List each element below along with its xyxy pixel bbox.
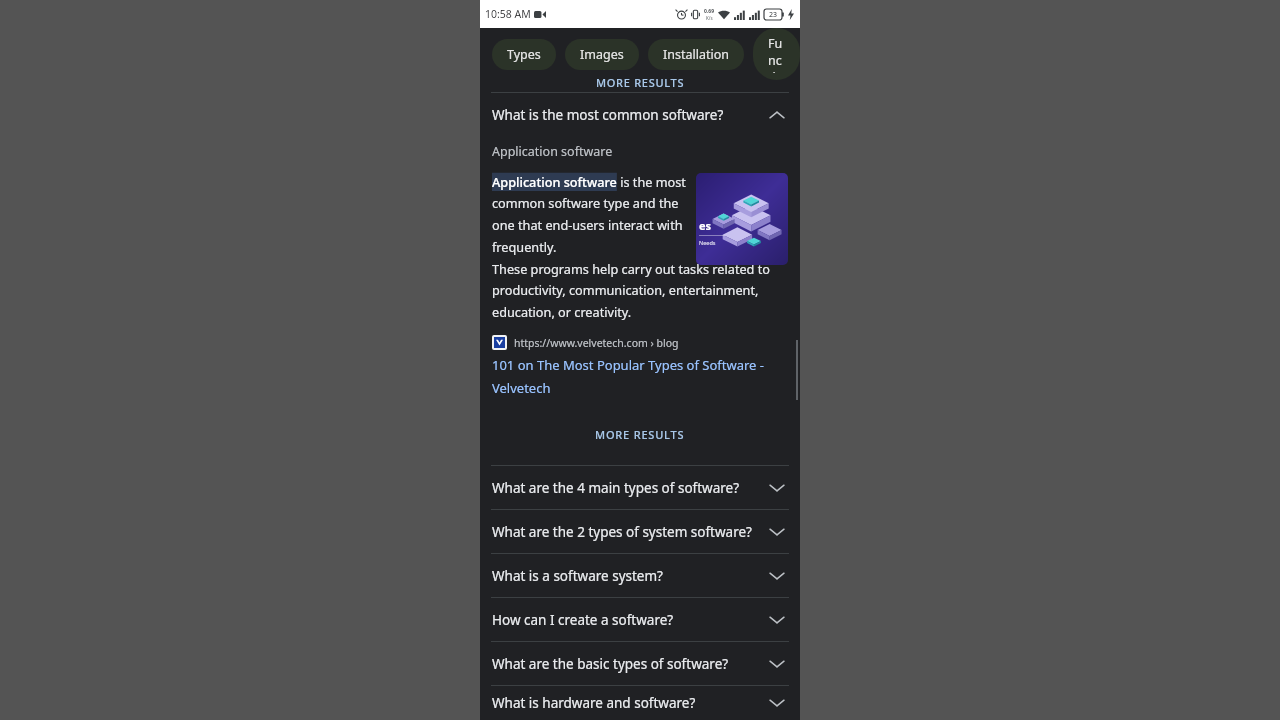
staticText: Installation <box>663 46 729 63</box>
button[interactable]: How can I create a software? <box>480 598 800 641</box>
button[interactable]: Installation <box>648 39 744 70</box>
button[interactable]: What are the 2 types of system software? <box>480 510 800 553</box>
staticText: 23 <box>769 10 778 20</box>
button[interactable]: https://www.velvetech.com › blog <box>480 335 800 397</box>
other: Expand <box>766 692 788 714</box>
staticText: Images <box>580 46 624 63</box>
staticText: Function <box>768 35 785 73</box>
button[interactable]: Result image <box>696 173 788 265</box>
staticText: 10:58 AM <box>485 7 531 21</box>
other: Expand <box>766 653 788 675</box>
staticText: What is a software system? <box>492 567 766 585</box>
staticText: Application software is the most common … <box>492 173 687 256</box>
button[interactable]: What are the 4 main types of software? <box>480 466 800 509</box>
button[interactable]: Types <box>492 39 556 70</box>
staticText: 0.69 <box>704 8 714 15</box>
staticText: What is the most common software? <box>492 106 766 124</box>
other: Expand <box>766 565 788 587</box>
staticText: These programs help carry out tasks rela… <box>492 260 788 321</box>
staticText: What are the 2 types of system software? <box>492 523 766 541</box>
staticText: Types <box>507 46 541 63</box>
staticText: What are the 4 main types of software? <box>492 479 766 497</box>
staticText: How can I create a software? <box>492 611 766 629</box>
staticText: Application software <box>492 143 613 160</box>
other: Expand <box>766 477 788 499</box>
staticText: K/s <box>706 15 713 21</box>
staticText: Needs <box>699 239 716 246</box>
other: Expand <box>766 609 788 631</box>
staticText: es <box>699 218 712 233</box>
button[interactable]: Images <box>565 39 639 70</box>
button[interactable]: Function <box>753 28 800 80</box>
button[interactable]: What is hardware and software? <box>480 686 800 720</box>
staticText: MORE RESULTS <box>596 75 685 87</box>
staticText: https://www.velvetech.com › blog <box>514 336 679 350</box>
staticText: 101 on The Most Popular Types of Softwar… <box>492 356 782 397</box>
staticText: What is hardware and software? <box>492 694 766 712</box>
button[interactable]: MORE RESULTS <box>480 421 800 448</box>
staticText: MORE RESULTS <box>595 427 685 442</box>
other: Collapse <box>766 104 788 126</box>
button[interactable]: What is the most common software? <box>480 93 800 136</box>
staticText: What are the basic types of software? <box>492 655 766 673</box>
button[interactable]: What are the basic types of software? <box>480 642 800 685</box>
button[interactable]: What is a software system? <box>480 554 800 597</box>
other: Expand <box>766 521 788 543</box>
